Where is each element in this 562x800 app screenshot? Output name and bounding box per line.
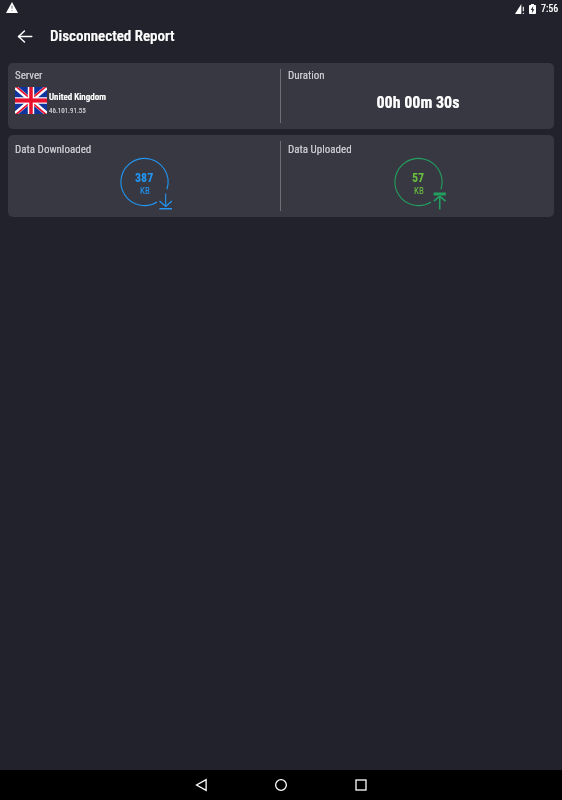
staticText: 7:56 xyxy=(541,3,559,15)
staticText: Data Downloaded xyxy=(15,143,92,156)
staticText: 387 xyxy=(135,171,154,185)
button[interactable]: Back xyxy=(4,18,46,55)
staticText: 00h 00m 30s xyxy=(285,93,551,112)
staticText: 46.101.91.55 xyxy=(49,107,86,115)
button[interactable]: Home xyxy=(257,770,305,800)
staticText: KB xyxy=(140,186,150,197)
button[interactable]: Back xyxy=(177,770,225,800)
staticText: United Kingdom xyxy=(49,92,106,103)
staticText: Data Uploaded xyxy=(288,143,352,156)
button[interactable]: Recents xyxy=(337,770,385,800)
staticText: KB xyxy=(414,186,424,197)
staticText: Server xyxy=(15,69,43,82)
staticText: Duration xyxy=(288,69,325,82)
staticText: 57 xyxy=(412,171,425,185)
staticText: Disconnected Report xyxy=(50,27,175,45)
